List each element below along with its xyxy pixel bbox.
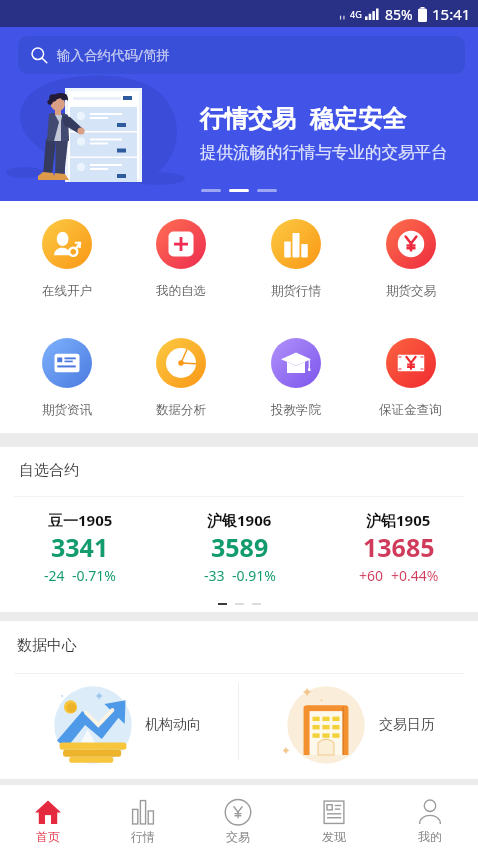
- staticText: 豆一1905: [48, 510, 113, 530]
- staticText: 3341: [51, 530, 109, 564]
- staticText: 交易: [226, 829, 250, 844]
- button[interactable]: 投教学院: [238, 338, 353, 418]
- staticText: 沪银1906: [207, 510, 272, 530]
- staticText: 机构动向: [145, 716, 201, 734]
- staticText: 3589: [211, 530, 269, 564]
- staticText: 我的: [418, 829, 442, 844]
- button[interactable]: 机构动向: [0, 674, 238, 779]
- staticText: -33: [204, 566, 225, 585]
- staticText: 稳定安全: [310, 104, 406, 134]
- button[interactable]: 沪铝1905: [319, 510, 478, 585]
- staticText: 期货资讯: [42, 402, 92, 418]
- staticText: 85%: [385, 5, 413, 24]
- staticText: 保证金查询: [379, 402, 442, 418]
- staticText: 数据分析: [156, 402, 206, 418]
- staticText: +60: [359, 566, 384, 585]
- button[interactable]: 行情: [95, 785, 190, 850]
- staticText: 首页: [36, 829, 60, 844]
- staticText: 15:41: [432, 4, 471, 24]
- button[interactable]: 数据分析: [124, 338, 238, 418]
- button[interactable]: 期货资讯: [10, 338, 124, 418]
- staticText: 期货行情: [271, 283, 321, 299]
- button[interactable]: 保证金查询: [353, 338, 468, 418]
- staticText: 交易日历: [379, 716, 435, 734]
- button[interactable]: 发现: [286, 785, 382, 850]
- staticText: 行情: [131, 829, 155, 844]
- staticText: 发现: [322, 829, 346, 844]
- staticText: 提供流畅的行情与专业的交易平台: [200, 142, 448, 163]
- staticText: 数据中心: [17, 636, 77, 655]
- button[interactable]: 我的: [382, 785, 478, 850]
- button[interactable]: 交易日历: [239, 674, 478, 779]
- staticText: 输入合约代码/简拼: [57, 46, 171, 64]
- staticText: 沪铝1905: [366, 510, 431, 530]
- staticText: -0.71%: [72, 566, 116, 585]
- button[interactable]: 期货行情: [238, 219, 353, 299]
- button[interactable]: 在线开户: [10, 219, 124, 299]
- staticText: 13685: [363, 530, 435, 564]
- staticText: 我的自选: [156, 283, 206, 299]
- staticText: +0.44%: [391, 566, 439, 585]
- button[interactable]: 我的自选: [124, 219, 238, 299]
- button[interactable]: 输入合约代码/简拼: [18, 36, 465, 74]
- staticText: 行情交易: [200, 104, 296, 134]
- button[interactable]: 豆一1905: [0, 510, 160, 585]
- button[interactable]: 交易: [190, 785, 286, 850]
- staticText: -24: [44, 566, 65, 585]
- button[interactable]: 首页: [0, 785, 95, 850]
- button[interactable]: 沪银1906: [160, 510, 319, 585]
- staticText: 在线开户: [42, 283, 92, 299]
- staticText: 自选合约: [19, 461, 79, 480]
- staticText: 4G: [350, 8, 362, 20]
- button[interactable]: 期货交易: [353, 219, 468, 299]
- staticText: 投教学院: [271, 402, 321, 418]
- staticText: -0.91%: [232, 566, 276, 585]
- staticText: 期货交易: [386, 283, 436, 299]
